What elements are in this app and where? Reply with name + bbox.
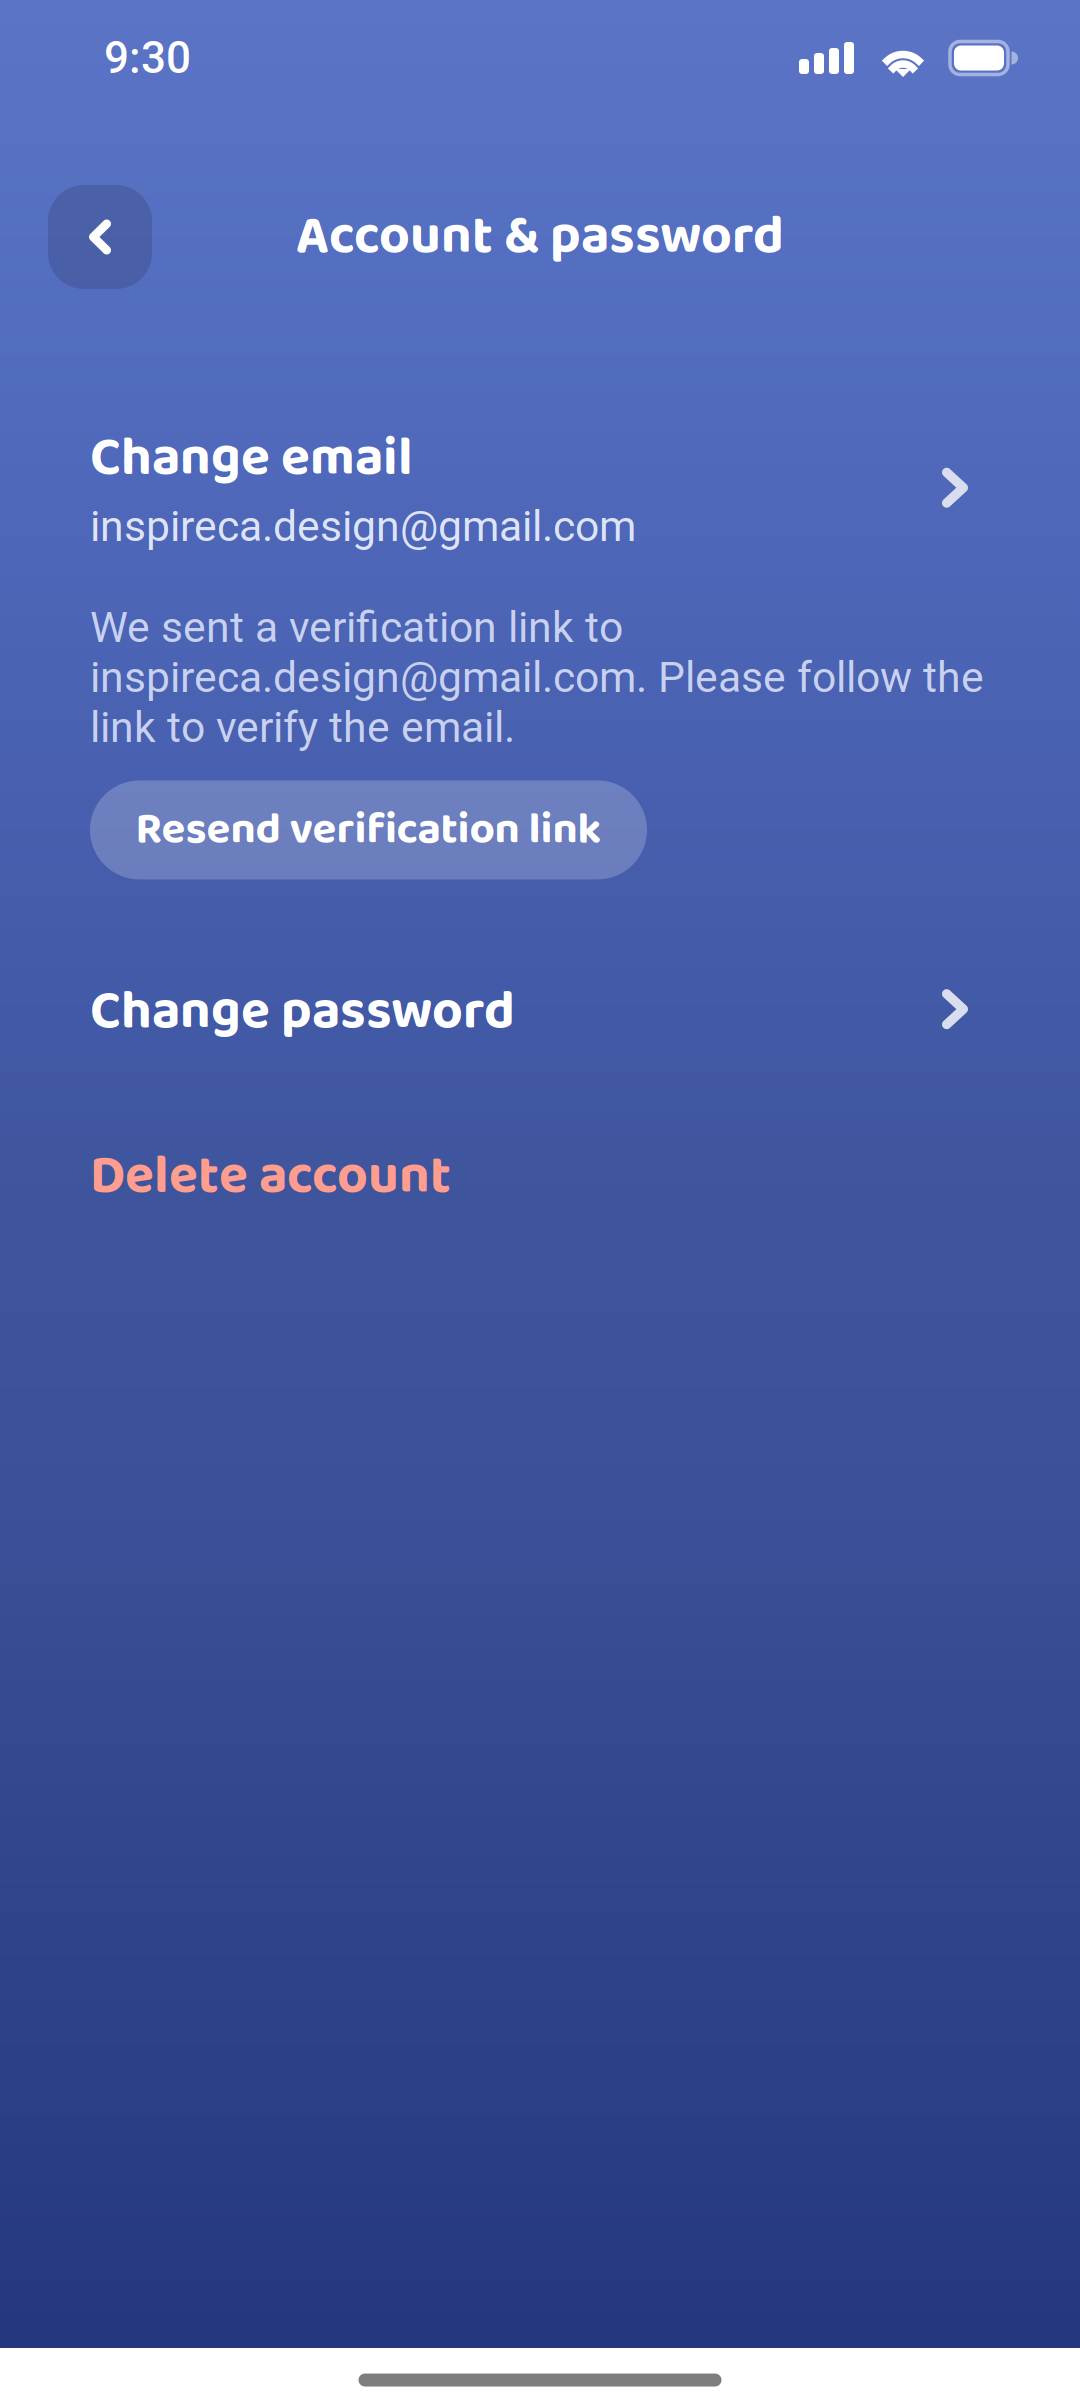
staticText: inspireca.design@gmail.com xyxy=(90,501,636,551)
staticText: Change email xyxy=(90,416,413,501)
staticText: Delete account xyxy=(90,1134,451,1219)
staticText: Account & password xyxy=(296,194,784,280)
staticText: 9:30 xyxy=(104,32,191,84)
staticText: We sent a verification link to inspireca… xyxy=(90,602,984,752)
button[interactable]: Back xyxy=(48,185,152,289)
staticText: Resend verification link xyxy=(135,795,601,865)
staticText: Change password xyxy=(90,969,515,1055)
button[interactable]: Change email xyxy=(90,416,1020,551)
button[interactable]: Change password xyxy=(90,969,1020,1055)
button[interactable]: Resend verification link xyxy=(90,780,647,879)
button[interactable]: Delete account xyxy=(90,1134,1020,1219)
